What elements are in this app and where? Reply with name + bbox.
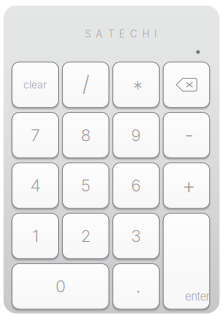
staticText: 8	[81, 125, 91, 145]
staticText: 4	[30, 176, 40, 196]
button[interactable]	[163, 62, 210, 107]
staticText: H	[142, 28, 149, 40]
button[interactable]: +	[163, 163, 210, 208]
staticText: 3	[131, 226, 141, 246]
button[interactable]: 0	[12, 264, 109, 309]
button[interactable]: 1	[12, 213, 58, 259]
staticText: clear	[23, 78, 47, 91]
staticText: 6	[131, 176, 141, 196]
button[interactable]: 5	[62, 163, 109, 208]
staticText: I	[154, 28, 157, 40]
staticText: 7	[31, 125, 40, 145]
staticText: .	[136, 274, 141, 297]
staticText: E	[119, 28, 125, 40]
staticText: 1	[32, 226, 38, 246]
staticText: 5	[81, 176, 91, 196]
staticText: S	[85, 28, 91, 40]
button[interactable]: clear	[12, 62, 58, 107]
staticText: enter	[185, 290, 210, 303]
button[interactable]: -	[163, 112, 210, 158]
button[interactable]: 3	[113, 213, 159, 259]
button[interactable]: 4	[12, 163, 58, 208]
staticText: 2	[81, 226, 91, 246]
staticText: +	[182, 173, 196, 198]
button[interactable]: *	[113, 62, 159, 107]
staticText: -	[184, 123, 193, 147]
button[interactable]: enter	[163, 213, 210, 309]
button[interactable]: 6	[113, 163, 159, 208]
button[interactable]: .	[113, 264, 159, 309]
button[interactable]: 8	[62, 112, 109, 158]
button[interactable]: 2	[62, 213, 109, 259]
staticText: 0	[55, 276, 65, 296]
staticText: T	[108, 28, 114, 40]
staticText: C	[130, 28, 137, 40]
staticText: *	[133, 77, 143, 100]
button[interactable]: 7	[12, 112, 58, 158]
staticText: A	[96, 28, 103, 40]
staticText: 9	[131, 125, 141, 145]
button[interactable]: 9	[113, 112, 159, 158]
staticText: /	[82, 71, 89, 97]
button[interactable]: /	[62, 62, 109, 107]
